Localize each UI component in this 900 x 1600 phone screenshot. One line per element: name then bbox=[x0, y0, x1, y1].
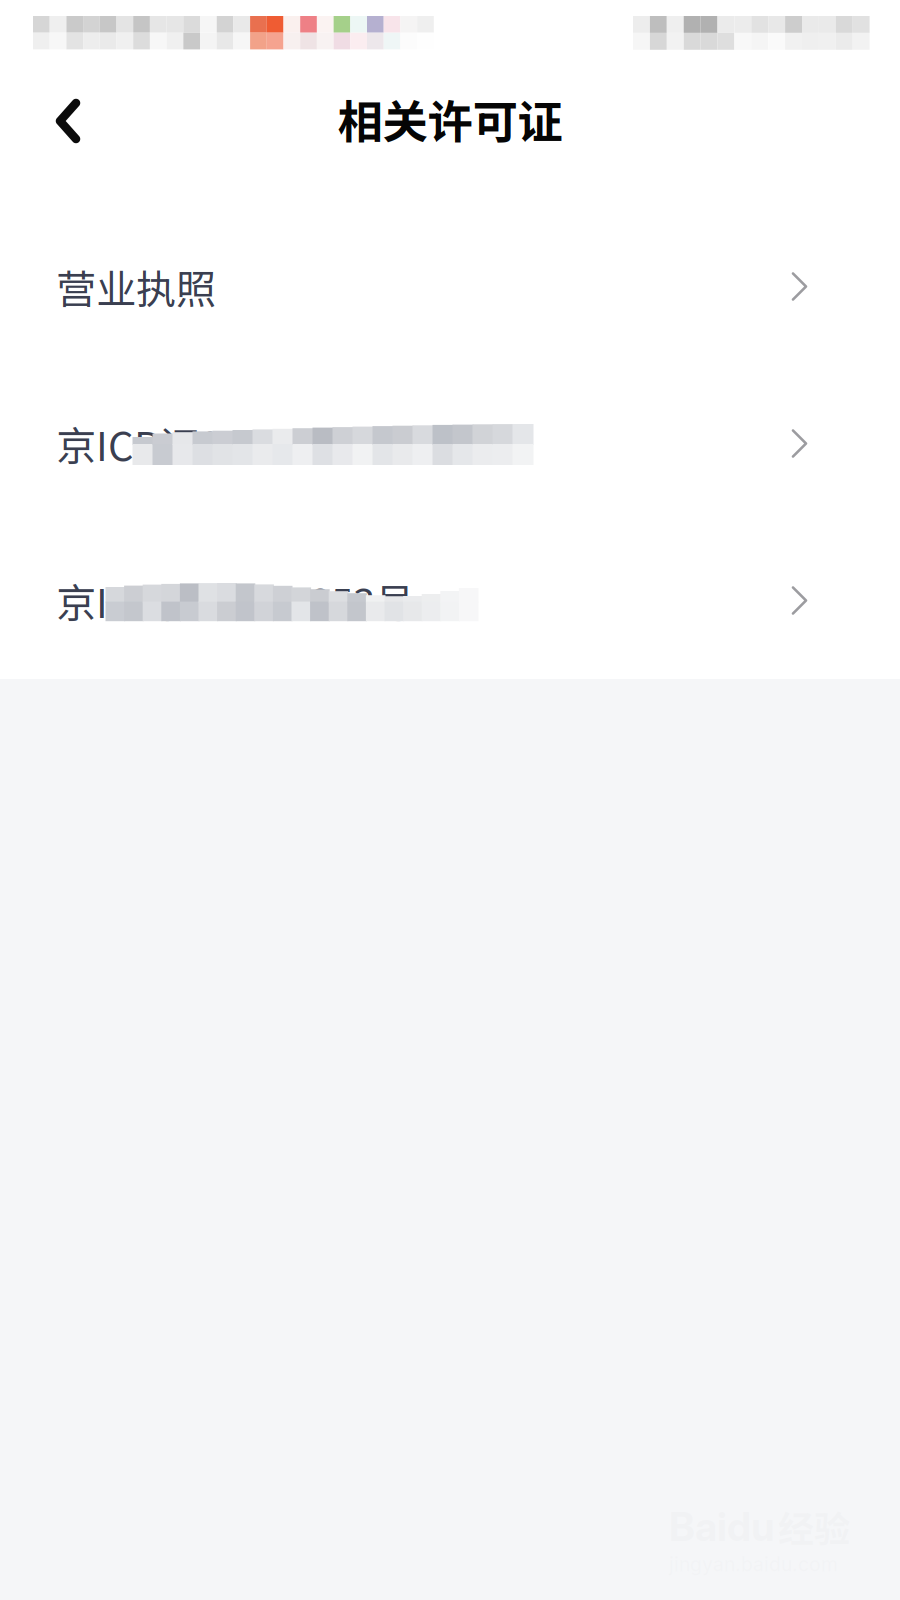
button[interactable]: 营业执照 bbox=[0, 208, 900, 365]
staticText: 营业执照 bbox=[56, 257, 216, 315]
button[interactable]: 京ICP备10052853号 bbox=[0, 522, 900, 679]
staticText: 相关许可证 bbox=[337, 86, 562, 152]
staticText: 京ICP证030173号 bbox=[56, 414, 371, 472]
button[interactable]: Back bbox=[18, 71, 118, 171]
staticText: 京ICP备10052853号 bbox=[56, 571, 415, 629]
button[interactable]: 京ICP证030173号 bbox=[0, 365, 900, 522]
